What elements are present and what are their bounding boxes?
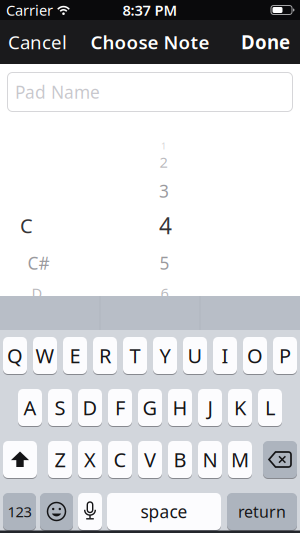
button[interactable]: G	[138, 388, 162, 426]
button[interactable]: space	[107, 492, 221, 530]
button[interactable]: U	[183, 336, 207, 374]
button[interactable]: V	[138, 440, 162, 478]
button[interactable]: E	[63, 336, 87, 374]
button[interactable]: I	[213, 336, 237, 374]
button[interactable]: L	[258, 388, 282, 426]
staticText: 1	[161, 140, 166, 152]
staticText: Y	[159, 342, 170, 369]
staticText: Carrier	[6, 0, 53, 20]
button[interactable]: 123	[3, 492, 36, 530]
staticText: return	[238, 501, 286, 522]
button[interactable]: Delete	[263, 440, 297, 478]
staticText: 2	[159, 152, 167, 172]
button[interactable]: M	[228, 440, 252, 478]
staticText: 8:37 PM	[122, 0, 177, 20]
button[interactable]: Dictate	[78, 492, 102, 530]
button[interactable]: B	[168, 440, 192, 478]
staticText: O	[247, 342, 263, 369]
staticText: Q	[7, 342, 23, 369]
staticText: A	[23, 394, 36, 421]
staticText: E	[69, 342, 80, 369]
staticText: R	[99, 342, 111, 369]
staticText: Z	[54, 446, 65, 473]
staticText: W	[35, 342, 54, 369]
button[interactable]: P	[273, 336, 297, 374]
staticText: space	[140, 500, 187, 523]
staticText: D	[31, 283, 42, 303]
staticText: L	[265, 394, 275, 421]
button[interactable]: Cancel	[0, 20, 67, 64]
staticText: B	[173, 446, 186, 473]
staticText: P	[279, 342, 291, 369]
staticText: C	[20, 212, 33, 239]
button[interactable]: Y	[153, 336, 177, 374]
button[interactable]: Emoji	[40, 492, 73, 530]
button[interactable]: Z	[48, 440, 72, 478]
staticText: 3	[159, 179, 169, 202]
staticText: 6	[160, 283, 168, 303]
button[interactable]: X	[78, 440, 102, 478]
button[interactable]: W	[33, 336, 57, 374]
staticText: X	[84, 446, 96, 473]
button[interactable]: D	[78, 388, 102, 426]
staticText: V	[144, 446, 156, 473]
staticText: N	[202, 446, 217, 473]
button[interactable]: K	[228, 388, 252, 426]
button[interactable]: Q	[3, 336, 27, 374]
button[interactable]: R	[93, 336, 117, 374]
staticText: D	[82, 394, 97, 421]
staticText: Cancel	[8, 30, 67, 54]
button[interactable]: J	[198, 388, 222, 426]
staticText: H	[172, 394, 187, 421]
staticText: S	[54, 394, 65, 421]
staticText: 123	[7, 502, 31, 521]
button[interactable]: O	[243, 336, 267, 374]
button[interactable]: Pad Name	[7, 72, 293, 112]
staticText: I	[221, 342, 228, 369]
staticText: T	[129, 342, 140, 369]
staticText: U	[187, 342, 202, 369]
staticText: G	[142, 394, 157, 421]
staticText: Pad Name	[15, 80, 100, 103]
staticText: 5	[159, 251, 169, 274]
button[interactable]: T	[123, 336, 147, 374]
staticText: F	[115, 394, 125, 421]
staticText: J	[207, 394, 212, 421]
button[interactable]: F	[108, 388, 132, 426]
button[interactable]: A	[18, 388, 42, 426]
button[interactable]: S	[48, 388, 72, 426]
button[interactable]: N	[198, 440, 222, 478]
staticText: C	[113, 446, 126, 473]
staticText: Choose Note	[90, 30, 209, 54]
button[interactable]: return	[227, 492, 297, 530]
staticText: M	[231, 446, 249, 473]
button[interactable]: C	[108, 440, 132, 478]
button[interactable]: Shift	[3, 440, 37, 478]
staticText: K	[234, 394, 246, 421]
button[interactable]: Done	[241, 20, 300, 64]
staticText: Done	[241, 30, 290, 54]
button[interactable]: H	[168, 388, 192, 426]
staticText: 4	[159, 210, 172, 240]
staticText: C#	[27, 251, 49, 274]
